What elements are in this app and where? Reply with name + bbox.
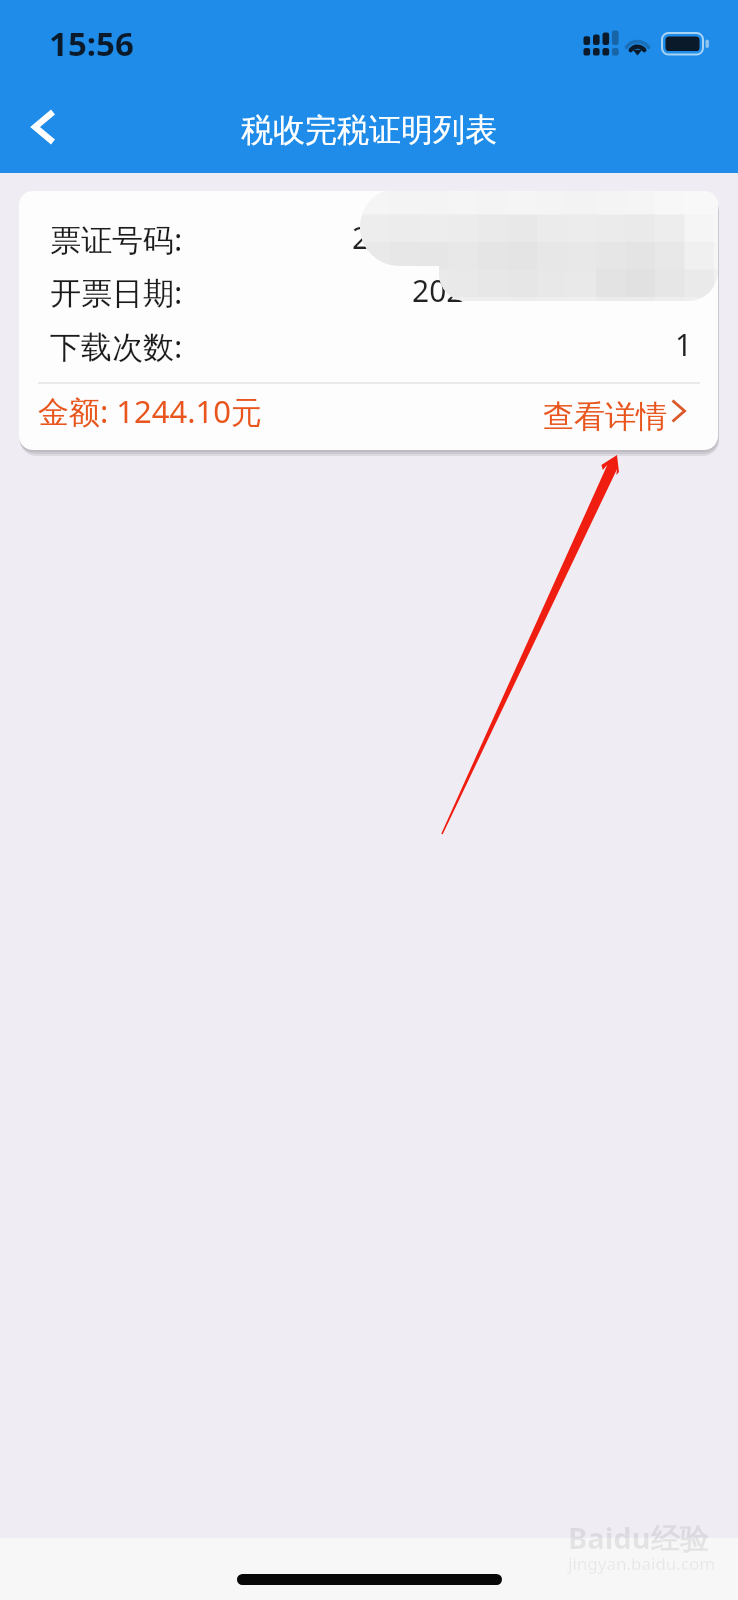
- staticText: Baidu经验: [568, 1518, 709, 1558]
- staticText: 202: [412, 270, 464, 311]
- button[interactable]: 查看详情: [533, 376, 705, 430]
- staticText: 下载次数:: [50, 325, 183, 367]
- staticText: jingyan.baidu.com: [568, 1552, 716, 1575]
- staticText: 15:56: [49, 21, 134, 66]
- staticText: 票证号码:: [50, 218, 183, 260]
- staticText: 1: [675, 324, 693, 365]
- button[interactable]: 票证号码:: [19, 191, 718, 450]
- staticText: 金额: 1244.10元: [38, 390, 263, 432]
- button[interactable]: Back: [12, 95, 72, 155]
- staticText: 开票日期:: [50, 271, 183, 313]
- staticText: 2: [352, 217, 370, 258]
- staticText: 查看详情: [543, 397, 667, 436]
- staticText: 税收完税证明列表: [241, 110, 497, 150]
